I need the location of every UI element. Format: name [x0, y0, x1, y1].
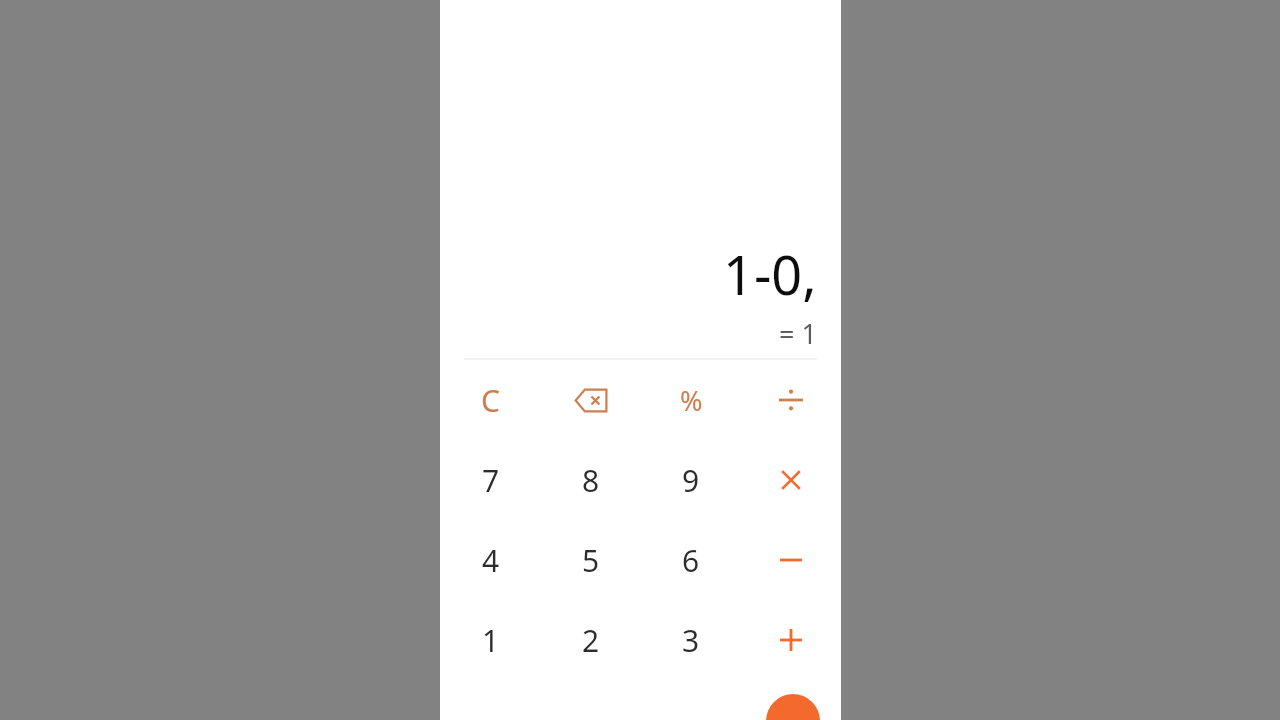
staticText: 6	[682, 540, 700, 581]
staticText: 2	[582, 620, 600, 661]
staticText: 3	[682, 620, 700, 661]
button[interactable]: Backspace	[541, 360, 641, 440]
staticText: 8	[582, 460, 600, 501]
staticText: %	[680, 382, 703, 419]
button[interactable]: Equals	[766, 694, 820, 720]
button[interactable]: %	[641, 360, 741, 440]
button[interactable]: 2	[541, 600, 641, 680]
button[interactable]: Plus	[741, 600, 841, 680]
button[interactable]: 5	[541, 520, 641, 600]
other: Divide	[778, 387, 804, 413]
button[interactable]: Minus	[741, 520, 841, 600]
staticText: 1-0,	[723, 237, 817, 311]
staticText: 1	[482, 620, 500, 661]
button[interactable]: 8	[541, 440, 641, 520]
button[interactable]: 4	[440, 520, 541, 600]
other: Plus	[779, 628, 803, 652]
staticText: C	[481, 380, 500, 421]
button[interactable]: 1	[440, 600, 541, 680]
button[interactable]: 9	[641, 440, 741, 520]
staticText: 9	[682, 460, 700, 501]
staticText: 4	[482, 540, 500, 581]
button[interactable]: 3	[641, 600, 741, 680]
button[interactable]: 6	[641, 520, 741, 600]
button[interactable]: Multiply	[741, 440, 841, 520]
other: Minus	[779, 548, 803, 572]
staticText: 5	[582, 540, 600, 581]
button[interactable]: Divide	[741, 360, 841, 440]
staticText: 7	[482, 460, 500, 501]
other: Multiply	[780, 469, 802, 491]
other: Backspace	[574, 388, 608, 413]
button[interactable]: 7	[440, 440, 541, 520]
button[interactable]: C	[440, 360, 541, 440]
staticText: = 1	[779, 315, 817, 352]
